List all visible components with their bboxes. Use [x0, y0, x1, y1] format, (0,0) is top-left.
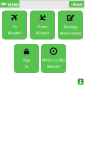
button[interactable]: To — [2, 10, 27, 39]
button[interactable]: Accessibility — [78, 79, 84, 85]
staticText: MENU — [7, 2, 19, 7]
button[interactable]: Sign — [14, 44, 39, 73]
staticText: Vehicle? — [46, 64, 60, 69]
button[interactable]: ‹ Back — [69, 1, 84, 7]
staticText: ‹ Back — [71, 2, 82, 7]
staticText: Reservations — [59, 30, 81, 36]
button[interactable]: MENU — [0, 0, 19, 7]
staticText: In — [25, 64, 28, 69]
button[interactable]: Where is My — [41, 44, 66, 73]
staticText: Airport — [36, 30, 49, 35]
staticText: From — [37, 24, 47, 29]
staticText: Sign — [23, 57, 30, 63]
staticText: Where is My — [42, 57, 65, 63]
staticText: Manage — [63, 24, 77, 29]
staticText: Airport — [8, 30, 21, 35]
button[interactable]: From — [30, 10, 55, 39]
button[interactable]: Manage — [58, 10, 83, 39]
staticText: To — [12, 24, 16, 29]
